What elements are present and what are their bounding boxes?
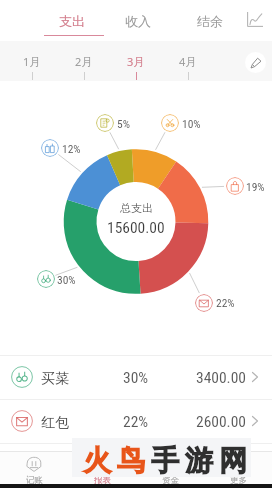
staticText: 2月 <box>75 54 93 69</box>
button[interactable]: Edit <box>245 52 266 73</box>
staticText: 3月 <box>127 54 145 69</box>
button[interactable]: 10% <box>161 114 179 132</box>
staticText: 总支出 <box>120 201 153 215</box>
button[interactable]: 买菜 <box>0 356 272 399</box>
button[interactable]: 报表 <box>72 451 132 488</box>
staticText: 15600.00 <box>107 219 165 237</box>
button[interactable]: 资金 <box>140 451 200 488</box>
staticText: 12% <box>62 142 81 155</box>
staticText: 1月 <box>23 54 41 69</box>
staticText: 30% <box>123 369 149 387</box>
button[interactable]: 结余 <box>180 0 240 41</box>
button[interactable]: 22% <box>195 294 213 312</box>
staticText: 4月 <box>179 54 197 69</box>
staticText: 报表 <box>94 475 111 486</box>
staticText: 22% <box>216 296 235 309</box>
button[interactable]: 12% <box>41 139 59 157</box>
button[interactable]: 收入 <box>108 0 168 41</box>
staticText: 19% <box>246 180 265 193</box>
button[interactable]: 红包 <box>0 400 272 443</box>
staticText: 22% <box>123 413 149 431</box>
button[interactable]: 19% <box>226 177 244 195</box>
staticText: 30% <box>57 273 76 286</box>
button[interactable]: 3月 <box>110 41 162 81</box>
button[interactable]: 5% <box>96 114 114 132</box>
button[interactable]: 30% <box>37 270 55 288</box>
staticText: 资金 <box>162 475 179 486</box>
staticText: 3400.00 <box>196 369 246 387</box>
staticText: 更多 <box>230 475 247 486</box>
staticText: 支出 <box>59 13 85 29</box>
staticText: 结余 <box>197 13 223 29</box>
staticText: 手游网 <box>148 443 250 478</box>
staticText: 5% <box>117 117 130 130</box>
button[interactable]: 记账 <box>4 451 64 488</box>
staticText: 红包 <box>41 414 69 432</box>
staticText: 买菜 <box>41 370 69 388</box>
staticText: 10% <box>182 117 201 130</box>
button[interactable]: 更多 <box>208 451 268 488</box>
button[interactable]: 1月 <box>6 41 58 81</box>
staticText: 2600.00 <box>196 413 246 431</box>
staticText: 记账 <box>26 475 43 486</box>
button[interactable]: Line chart <box>240 4 270 34</box>
button[interactable]: 4月 <box>162 41 214 81</box>
button[interactable]: 支出 <box>42 0 102 41</box>
staticText: 火鸟 <box>80 443 148 478</box>
button[interactable]: 2月 <box>58 41 110 81</box>
staticText: 收入 <box>125 13 151 29</box>
